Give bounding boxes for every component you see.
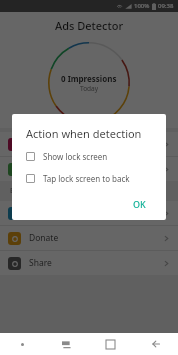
staticText: 0 Impressions [61, 73, 117, 84]
button[interactable]: Avoid accidental touch [0, 157, 178, 181]
staticText: Extras [10, 186, 31, 196]
button[interactable]: OK [123, 194, 156, 214]
staticText: Avoid accidental touch [29, 163, 119, 175]
staticText: Show lock screen [43, 151, 108, 162]
button[interactable]: Support [0, 201, 178, 225]
staticText: Action when detection [26, 126, 142, 141]
button[interactable]: Detected apps [0, 132, 178, 156]
button[interactable]: Back [133, 333, 178, 355]
staticText: Today [80, 84, 99, 93]
staticText: 09:38 [158, 2, 174, 10]
button[interactable]: Show lock screen [26, 151, 156, 162]
button[interactable]: Recent apps [88, 333, 133, 355]
button[interactable]: Hide keyboard [44, 333, 88, 355]
staticText: Tap lock screen to back [43, 173, 130, 184]
staticText: Donate [29, 232, 59, 244]
staticText: Ads Detector [55, 18, 124, 33]
button[interactable]: Share [0, 251, 178, 275]
staticText: 100% [134, 2, 150, 10]
staticText: Share [29, 257, 52, 269]
button[interactable]: Menu [0, 333, 44, 355]
button[interactable]: Tap lock screen to back [26, 173, 156, 184]
staticText: OK [133, 198, 146, 210]
button[interactable]: Donate [0, 226, 178, 250]
